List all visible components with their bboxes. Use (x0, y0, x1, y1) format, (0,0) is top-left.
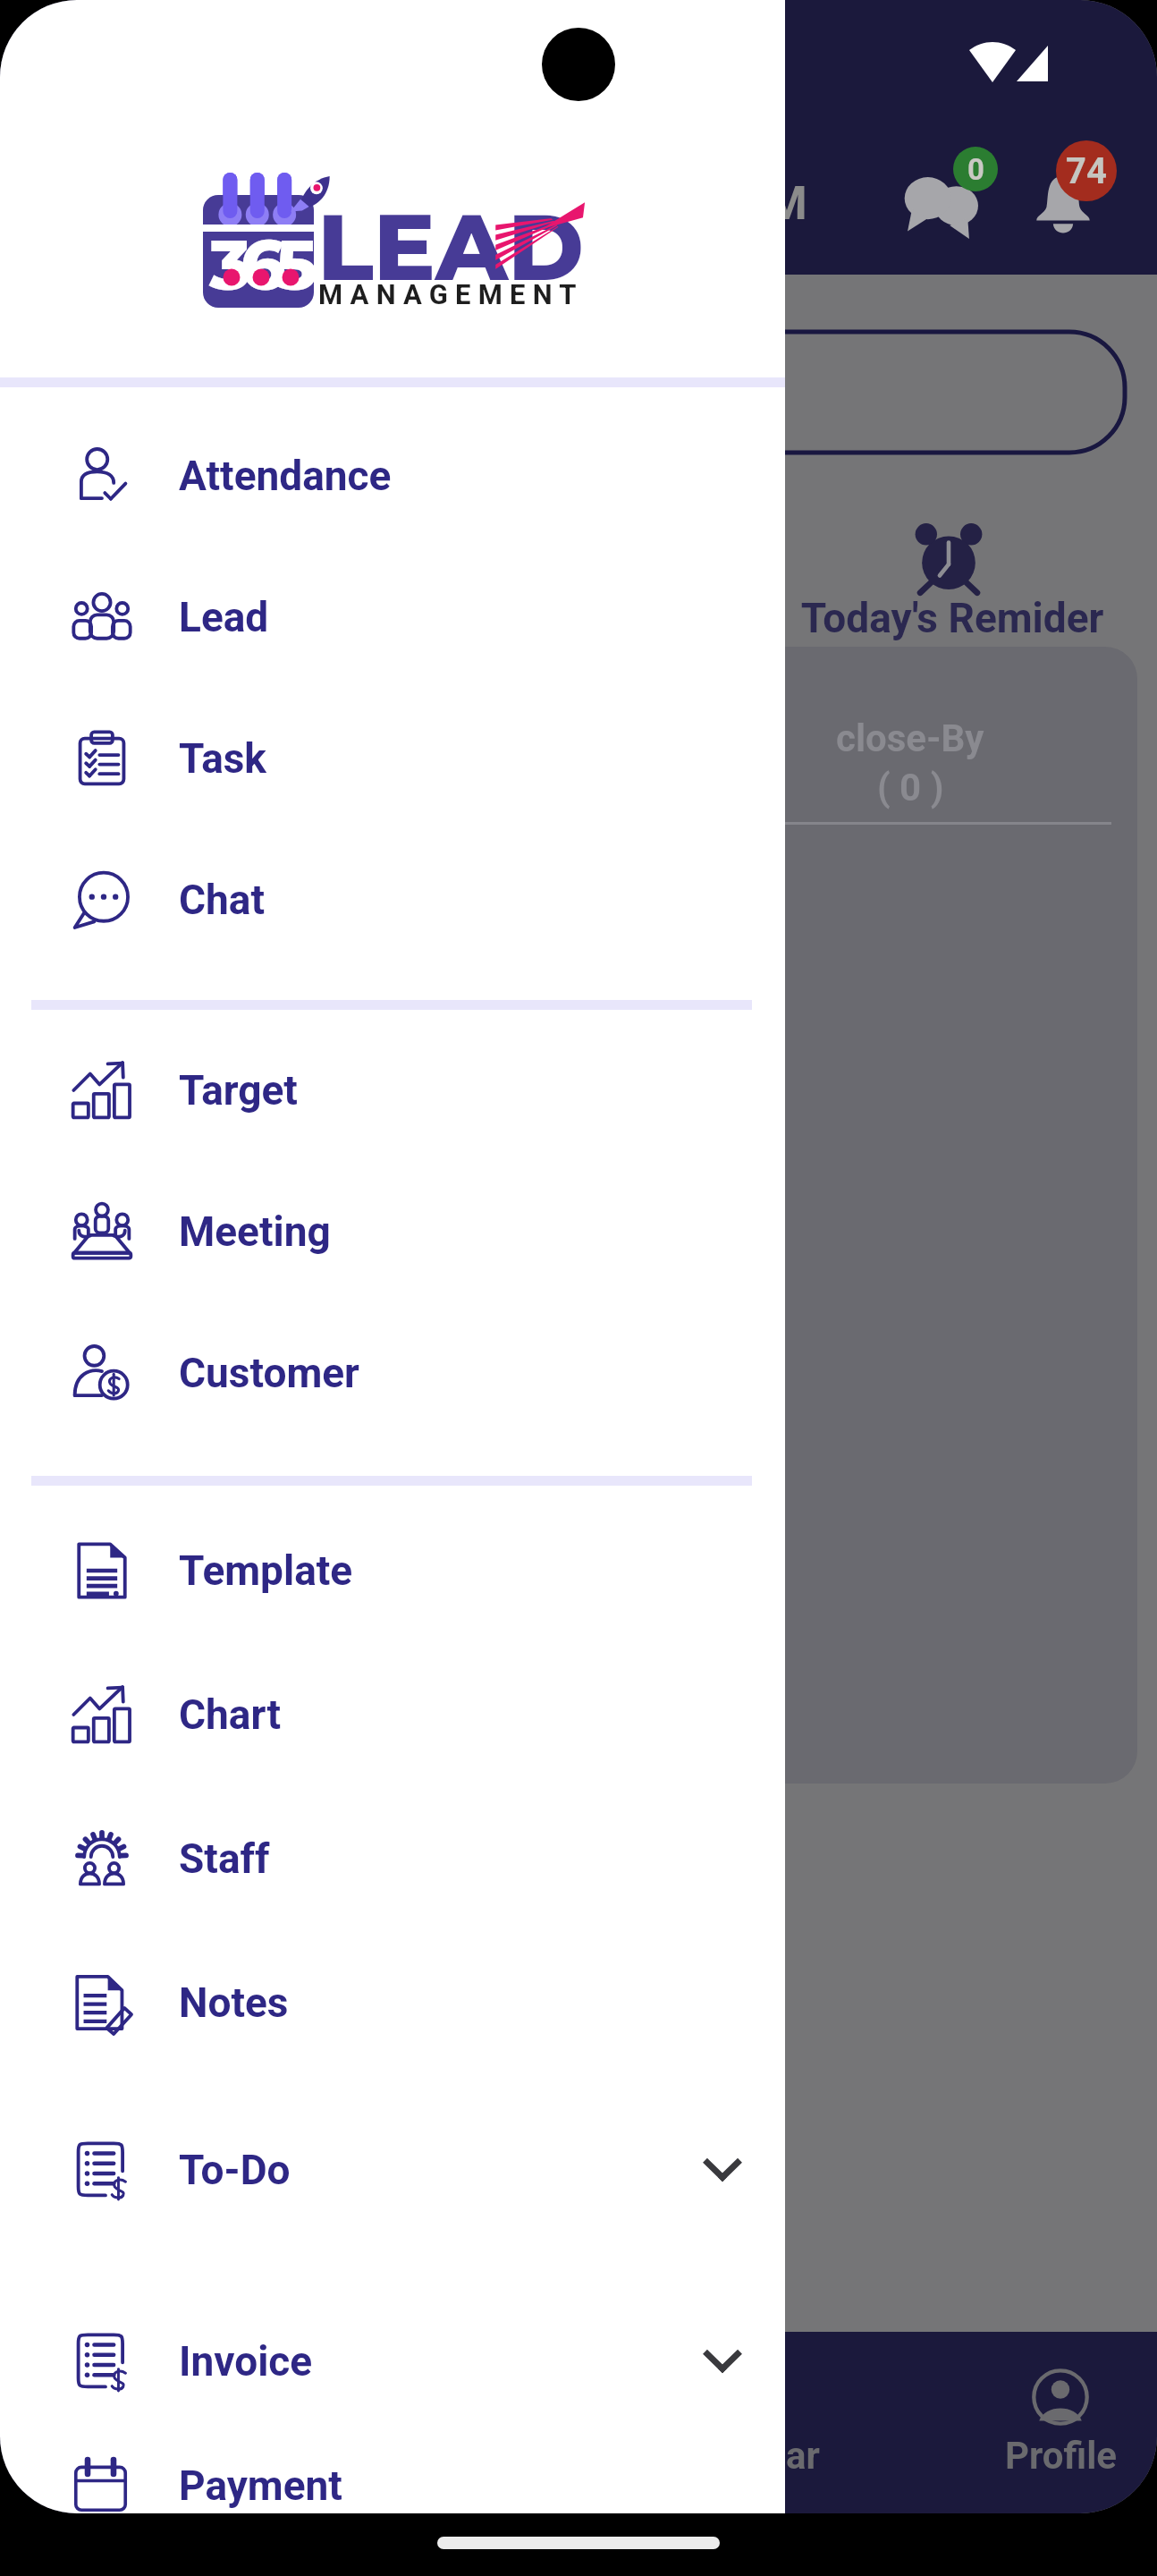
staticText: Chart (179, 1690, 282, 1739)
staticText: Template (179, 1546, 353, 1595)
staticText: LEAD (317, 191, 585, 303)
staticText: Call (138, 716, 203, 760)
staticText: close-By (836, 716, 984, 760)
staticText: Meeting (179, 1207, 331, 1256)
staticText: 0 (967, 152, 984, 187)
button[interactable]: Payment (0, 2457, 785, 2513)
staticText: Chat (179, 876, 266, 924)
button[interactable]: Notifications (1035, 176, 1091, 232)
staticText: 74 (1066, 150, 1107, 192)
button[interactable]: Chart (0, 1642, 785, 1786)
button[interactable]: Lead (0, 547, 785, 688)
button[interactable]: Task (0, 688, 785, 829)
staticText: Home (61, 2434, 162, 2478)
button[interactable]: Customer (0, 1302, 785, 1444)
staticText: Profile (1005, 2434, 1117, 2478)
staticText: Attendance (179, 452, 392, 500)
staticText: CRM (706, 176, 807, 231)
staticText: Notes (179, 1979, 289, 2027)
staticText: ( 0 ) (877, 766, 944, 809)
staticText: Calendar (669, 2434, 820, 2478)
staticText: Customer (179, 1349, 359, 1397)
button[interactable]: Messages (903, 164, 978, 239)
staticText: Staff (179, 1835, 270, 1883)
staticText: ( 0 ) (137, 766, 204, 809)
button[interactable]: Template (0, 1498, 785, 1642)
button[interactable]: Invoice (0, 2266, 785, 2457)
button[interactable]: Meeting (0, 1161, 785, 1302)
button[interactable]: Profile (902, 2332, 1157, 2513)
button[interactable]: Target (0, 1020, 785, 1161)
staticText: Target (179, 1066, 298, 1114)
button[interactable]: Lead (269, 2332, 586, 2513)
staticText: Today's Remider (675, 594, 1157, 642)
button[interactable] (32, 330, 1127, 454)
button[interactable]: Notes (0, 1930, 785, 2074)
staticText: Invoice (179, 2337, 313, 2385)
button[interactable]: Home (0, 2332, 269, 2513)
button[interactable]: Chat (0, 829, 785, 970)
button[interactable]: To-Do (0, 2074, 785, 2266)
staticText: Task (179, 734, 266, 783)
staticText: To-Do (179, 2146, 291, 2194)
staticText: Lead (179, 593, 269, 641)
staticText: 365 (209, 222, 308, 307)
staticText: Payment (179, 2462, 342, 2510)
button[interactable]: Staff (0, 1786, 785, 1930)
staticText: MANAGEMENT (318, 278, 584, 310)
button[interactable]: Attendance (0, 405, 785, 547)
button[interactable]: Calendar (586, 2332, 902, 2513)
